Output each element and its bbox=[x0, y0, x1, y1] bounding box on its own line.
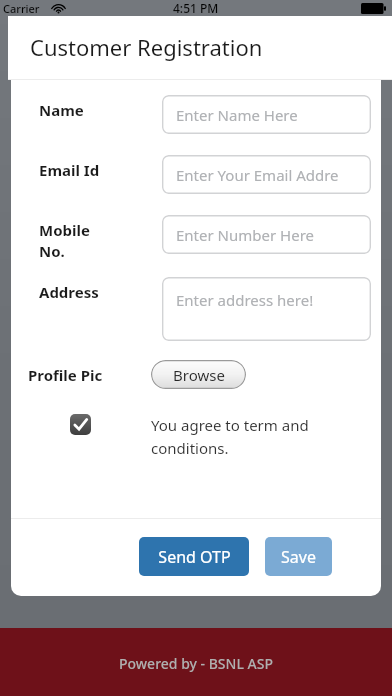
staticText: Profile Pic bbox=[28, 365, 103, 385]
staticText: Mobile No. bbox=[39, 220, 149, 262]
staticText: Name bbox=[39, 100, 149, 120]
button[interactable]: Agree to terms and conditions bbox=[60, 413, 102, 455]
staticText: Enter Name Here bbox=[176, 105, 298, 125]
staticText: 4:51 PM bbox=[173, 0, 219, 16]
staticText: Send OTP bbox=[158, 546, 231, 568]
staticText: Browse bbox=[173, 365, 225, 385]
staticText: Powered by - BSNL ASP bbox=[119, 654, 273, 673]
button[interactable]: Send OTP bbox=[139, 537, 249, 576]
staticText: Customer Registration bbox=[30, 32, 263, 62]
staticText: Enter address here! bbox=[176, 290, 314, 310]
button[interactable]: Enter address here! bbox=[162, 277, 371, 341]
staticText: Carrier bbox=[3, 1, 40, 16]
button[interactable]: Enter Number Here bbox=[162, 215, 371, 254]
button[interactable]: Enter Name Here bbox=[162, 95, 371, 134]
staticText: Enter Number Here bbox=[176, 225, 314, 245]
staticText: Address bbox=[39, 282, 149, 302]
staticText: Save bbox=[281, 546, 316, 568]
staticText: You agree to term and conditions. bbox=[151, 415, 309, 458]
staticText: Email Id bbox=[39, 160, 149, 180]
button[interactable]: Save bbox=[265, 537, 332, 576]
button[interactable]: Enter Your Email Addre bbox=[162, 155, 371, 194]
staticText: Enter Your Email Addre bbox=[176, 165, 339, 185]
button[interactable]: Browse bbox=[151, 360, 246, 389]
